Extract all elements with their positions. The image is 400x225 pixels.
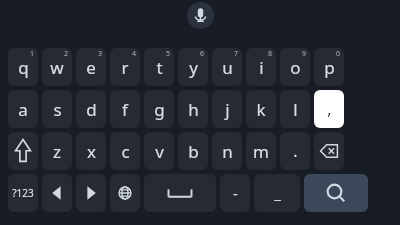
staticText: 5: [166, 49, 171, 59]
staticText: z: [53, 140, 61, 163]
staticText: 8: [268, 49, 273, 59]
staticText: y: [189, 56, 198, 79]
staticText: 6: [200, 49, 205, 59]
button[interactable]: a: [8, 90, 38, 128]
staticText: b: [188, 140, 199, 163]
staticText: 2: [64, 49, 69, 59]
staticText: q: [18, 56, 29, 79]
button[interactable]: 8: [246, 48, 276, 86]
button[interactable]: v: [144, 132, 174, 170]
staticText: x: [87, 140, 96, 163]
button[interactable]: h: [178, 90, 208, 128]
staticText: d: [86, 98, 97, 121]
staticText: ?123: [12, 186, 34, 200]
staticText: 9: [302, 49, 307, 59]
staticText: f: [122, 98, 128, 121]
button[interactable]: l: [280, 90, 310, 128]
staticText: _: [274, 183, 281, 203]
staticText: -: [233, 183, 238, 203]
staticText: c: [121, 140, 130, 163]
button[interactable]: ?123: [8, 174, 38, 212]
staticText: ,: [327, 98, 332, 120]
staticText: t: [156, 56, 163, 79]
staticText: .: [293, 140, 298, 162]
staticText: u: [222, 56, 233, 79]
staticText: k: [256, 98, 266, 121]
button[interactable]: ,: [314, 90, 344, 128]
button[interactable]: Move cursor left: [42, 174, 72, 212]
staticText: v: [155, 140, 164, 163]
button[interactable]: c: [110, 132, 140, 170]
button[interactable]: m: [246, 132, 276, 170]
button[interactable]: -: [220, 174, 250, 212]
staticText: i: [259, 56, 264, 79]
button[interactable]: 1: [8, 48, 38, 86]
staticText: 1: [30, 49, 35, 59]
button[interactable]: d: [76, 90, 106, 128]
staticText: j: [225, 98, 230, 121]
staticText: 4: [132, 49, 137, 59]
button[interactable]: g: [144, 90, 174, 128]
button[interactable]: 3: [76, 48, 106, 86]
button[interactable]: 0: [314, 48, 344, 86]
button[interactable]: k: [246, 90, 276, 128]
button[interactable]: 9: [280, 48, 310, 86]
staticText: g: [154, 98, 165, 121]
button[interactable]: .: [280, 132, 310, 170]
staticText: e: [86, 56, 96, 79]
button[interactable]: Shift: [8, 132, 38, 170]
button[interactable]: j: [212, 90, 242, 128]
button[interactable]: 2: [42, 48, 72, 86]
button[interactable]: Space: [144, 174, 216, 212]
button[interactable]: s: [42, 90, 72, 128]
staticText: h: [188, 98, 199, 121]
button[interactable]: Move cursor right: [76, 174, 106, 212]
staticText: o: [290, 56, 301, 79]
button[interactable]: Voice input: [187, 2, 214, 29]
button[interactable]: Backspace: [314, 132, 344, 170]
button[interactable]: z: [42, 132, 72, 170]
button[interactable]: _: [254, 174, 300, 212]
staticText: a: [18, 98, 28, 121]
staticText: n: [222, 140, 233, 163]
button[interactable]: x: [76, 132, 106, 170]
staticText: 3: [98, 49, 103, 59]
staticText: m: [253, 140, 269, 163]
staticText: 0: [336, 49, 341, 59]
staticText: r: [121, 56, 129, 79]
staticText: l: [293, 98, 298, 121]
button[interactable]: 5: [144, 48, 174, 86]
button[interactable]: f: [110, 90, 140, 128]
staticText: w: [50, 56, 64, 79]
button[interactable]: 6: [178, 48, 208, 86]
button[interactable]: Change keyboard language: [110, 174, 140, 212]
staticText: p: [324, 56, 335, 79]
staticText: s: [53, 98, 62, 121]
staticText: 7: [234, 49, 239, 59]
button[interactable]: n: [212, 132, 242, 170]
button[interactable]: b: [178, 132, 208, 170]
button[interactable]: Search: [304, 174, 368, 212]
button[interactable]: 7: [212, 48, 242, 86]
button[interactable]: 4: [110, 48, 140, 86]
